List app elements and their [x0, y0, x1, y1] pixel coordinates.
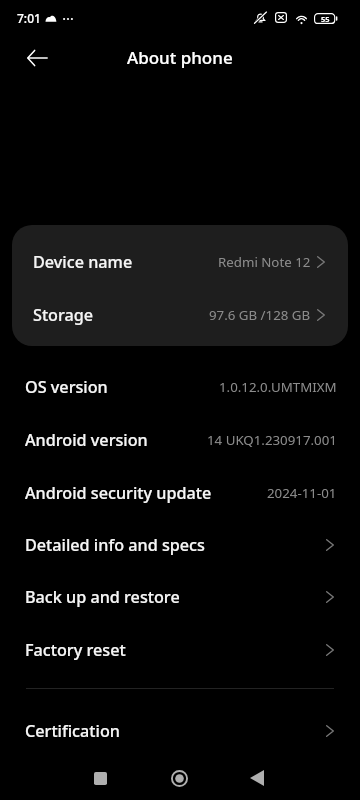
- button[interactable]: Back: [237, 758, 277, 798]
- staticText: Redmi Note 12: [218, 253, 311, 271]
- staticText: About phone: [127, 46, 233, 69]
- button[interactable]: Recent apps: [80, 758, 120, 798]
- staticText: 55: [321, 14, 330, 24]
- staticText: 2024-11-01: [267, 484, 337, 502]
- staticText: Android security update: [25, 482, 212, 504]
- button[interactable]: Android security update: [0, 466, 360, 519]
- button[interactable]: Back up and restore: [0, 570, 360, 623]
- button[interactable]: Detailed info and specs: [0, 518, 360, 571]
- button[interactable]: Android version: [0, 413, 360, 466]
- staticText: 14 UKQ1.230917.001: [207, 431, 337, 449]
- button[interactable]: Factory reset: [0, 623, 360, 676]
- button[interactable]: Device name: [12, 235, 348, 288]
- button[interactable]: Back: [19, 39, 56, 76]
- staticText: Detailed info and specs: [25, 534, 205, 556]
- button[interactable]: Home: [159, 758, 199, 798]
- staticText: OS version: [25, 376, 108, 398]
- button[interactable]: Storage: [12, 288, 348, 341]
- staticText: 97.6 GB /128 GB: [209, 306, 311, 324]
- staticText: Certification: [25, 720, 120, 742]
- staticText: 1.0.12.0.UMTMIXM: [219, 378, 337, 396]
- staticText: Android version: [25, 429, 148, 451]
- staticText: Storage: [33, 304, 94, 326]
- button[interactable]: Certification: [0, 704, 360, 757]
- staticText: Back up and restore: [25, 586, 180, 608]
- staticText: Factory reset: [25, 639, 126, 661]
- button[interactable]: OS version: [0, 360, 360, 413]
- staticText: 7:01: [17, 10, 41, 26]
- staticText: Device name: [33, 251, 133, 273]
